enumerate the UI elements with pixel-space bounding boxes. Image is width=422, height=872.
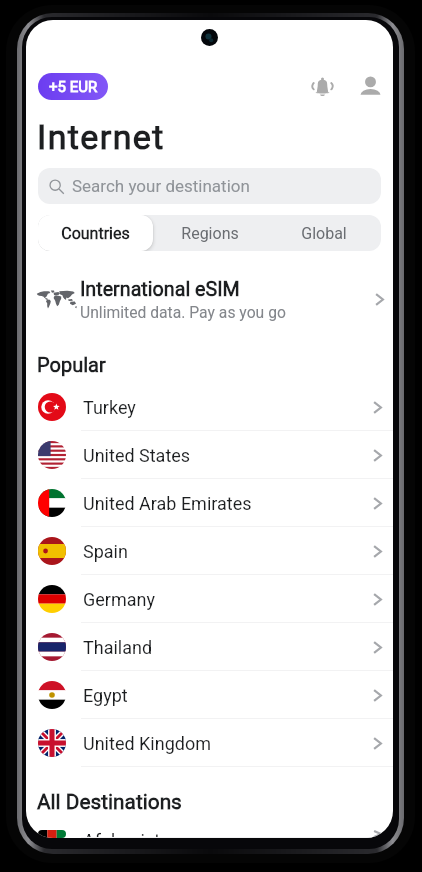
staticText: Germany (83, 589, 155, 610)
button[interactable]: Turkey (26, 383, 393, 431)
button[interactable]: Spain (26, 527, 393, 575)
button[interactable]: Afghanistan (26, 830, 393, 838)
staticText: Spain (83, 541, 128, 562)
button[interactable]: Search your destination (38, 168, 381, 204)
staticText: Egypt (83, 685, 128, 706)
button[interactable]: Regions (153, 215, 267, 251)
staticText: United Arab Emirates (83, 493, 252, 514)
staticText: All Destinations (37, 790, 182, 814)
button[interactable]: Global (267, 215, 381, 251)
staticText: Global (301, 224, 347, 243)
button[interactable]: Egypt (26, 671, 393, 719)
button[interactable]: Countries (38, 215, 153, 251)
staticText: Unlimited data. Pay as you go (80, 303, 286, 321)
staticText: Popular (37, 353, 106, 376)
staticText: +5 EUR (49, 78, 98, 96)
staticText: Afghanistan (83, 830, 180, 838)
staticText: Regions (181, 224, 239, 243)
staticText: United States (83, 445, 191, 466)
staticText: Internet (37, 117, 165, 157)
button[interactable]: Germany (26, 575, 393, 623)
staticText: Countries (61, 224, 130, 243)
button[interactable]: International eSIM (26, 270, 393, 328)
staticText: Search your destination (72, 176, 250, 196)
staticText: International eSIM (80, 278, 240, 301)
staticText: Turkey (83, 397, 136, 418)
button[interactable]: Notifications (306, 73, 338, 100)
button[interactable]: Account (354, 73, 386, 100)
button[interactable]: United Kingdom (26, 719, 393, 767)
staticText: Thailand (83, 637, 153, 658)
staticText: United Kingdom (83, 733, 211, 754)
button[interactable]: +5 EUR (38, 73, 108, 100)
button[interactable]: United Arab Emirates (26, 479, 393, 527)
button[interactable]: United States (26, 431, 393, 479)
button[interactable]: Thailand (26, 623, 393, 671)
